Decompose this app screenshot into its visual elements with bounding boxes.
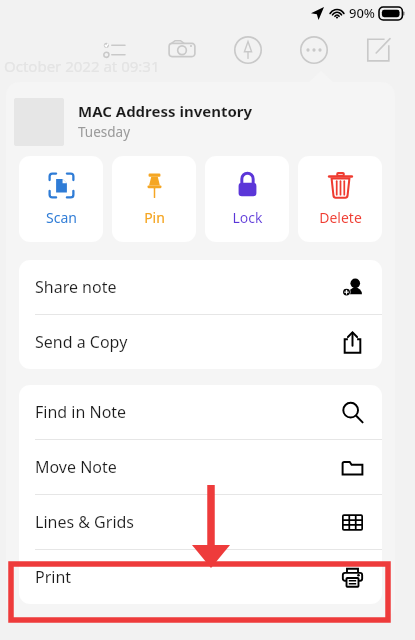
button[interactable]: Lock — [205, 156, 289, 242]
button[interactable]: Delete — [298, 156, 382, 242]
staticText: 90% — [349, 4, 375, 22]
staticText: Tuesday — [78, 123, 131, 141]
staticText: Lock — [232, 208, 263, 227]
button[interactable]: Move Note — [19, 440, 382, 494]
button[interactable]: Checklist — [99, 33, 133, 67]
staticText: Lines & Grids — [35, 511, 135, 533]
staticText: MAC Address inventory — [78, 101, 253, 121]
staticText: Find in Note — [35, 401, 127, 423]
staticText: October 2022 at 09:31 — [4, 56, 160, 76]
staticText: Print — [35, 566, 72, 588]
button[interactable]: More — [297, 33, 331, 67]
staticText: Delete — [319, 208, 362, 227]
staticText: Share note — [35, 276, 117, 298]
staticText: Pin — [144, 208, 165, 227]
staticText: Move Note — [35, 456, 117, 478]
button[interactable]: Scan — [19, 156, 103, 242]
button[interactable]: Pin — [112, 156, 196, 242]
button[interactable]: Find in Note — [19, 385, 382, 439]
button[interactable]: Share note — [19, 260, 382, 314]
button[interactable]: Print — [19, 550, 382, 604]
button[interactable]: Compose — [361, 33, 395, 67]
button[interactable]: Markup — [231, 33, 265, 67]
staticText: Scan — [46, 208, 77, 227]
button[interactable]: Send a Copy — [19, 315, 382, 369]
button[interactable]: Lines & Grids — [19, 495, 382, 549]
button[interactable]: Camera — [165, 33, 199, 67]
staticText: Send a Copy — [35, 331, 128, 353]
